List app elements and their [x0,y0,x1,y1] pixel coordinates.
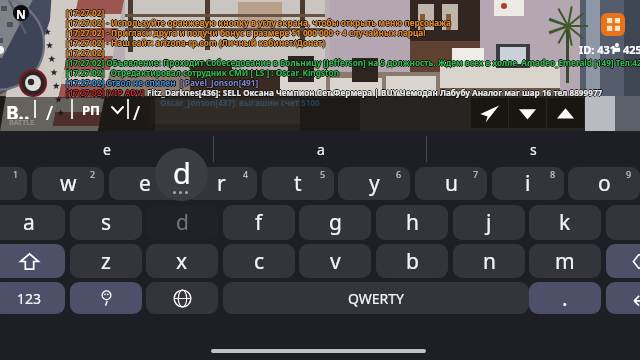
button[interactable]: u [415,167,487,200]
button[interactable]: s [70,205,142,240]
staticText: 6 [396,168,402,180]
button[interactable]: РП [82,100,101,120]
staticText: [17:27:02] Ствол не спилен [67,77,181,88]
button[interactable]: Enter [606,282,640,314]
staticText: [17:27:02] - Пригласи друга и получи бон… [66,26,426,37]
staticText: 1 [13,168,19,180]
staticText: [ Pavel_Jonson[491] [180,77,259,88]
staticText: Oscar_Jonson[437]: выгашин счет 5100 [160,97,320,108]
button[interactable]: x [146,244,218,278]
staticText: [17:27:02] [VIP ADV] [66,87,147,98]
button[interactable]: Scroll up [547,98,584,128]
staticText: [17:27:02] ОБъявление: Проходит Собеседо… [66,57,640,68]
button[interactable]: Scroll down [509,98,546,128]
button[interactable]: v [299,244,371,278]
button[interactable]: f [223,205,295,240]
staticText: [ Pavel_Jonson[491] [180,76,259,87]
button[interactable] [0,97,155,131]
staticText: [17:27:02] - Наш сайт: arizona-rp.com (Л… [67,37,326,48]
staticText: QWERTY [348,289,405,308]
button[interactable]: w [32,167,104,200]
button[interactable]: 123 [0,282,65,314]
staticText: [17:27:02] [VIP ADV] [66,86,147,97]
staticText: z [101,247,111,276]
staticText: [17:27:02] ОБъявление: Проходит Собеседо… [66,58,640,69]
button[interactable]: Character menu [601,13,625,36]
button[interactable]: a [0,205,65,240]
staticText: [17:27:02] Отредактировал сотрудник СМИ … [67,67,340,78]
staticText: [ Pavel_Jonson[491] [181,77,260,88]
button[interactable]: n [453,244,525,278]
staticText: [17:27:02] [VIP ADV] [65,87,146,98]
staticText: 123 [17,289,42,308]
staticText: i [525,169,531,198]
staticText: [17:27:02] [66,47,105,58]
staticText: 425 [623,42,640,57]
staticText: [17:27:02] [66,46,105,57]
staticText: [ Pavel_Jonson[491] [179,77,258,88]
staticText: [17:27:02] [65,7,104,18]
staticText: Fitz_Darknes[436]: SELL Оксана Чемпион С… [146,87,602,98]
button[interactable]: Language [146,282,218,314]
staticText: 8 [550,168,556,180]
button[interactable]: В.. [6,100,34,119]
button[interactable]: z [70,244,142,278]
staticText: [17:27:02] Ствол не спилен [66,76,180,87]
button[interactable]: b [376,244,448,278]
staticText: [17:27:02] - Пригласи друга и получи бон… [66,27,426,38]
button[interactable]: m [529,244,601,278]
staticText: [17:27:02] [66,8,105,19]
staticText: n [483,247,496,276]
staticText: [17:27:02] - Используйте оранжевую кнопк… [67,17,452,28]
button[interactable]: h [376,205,448,240]
button[interactable]: e [109,167,181,200]
button[interactable]: c [223,244,295,278]
button[interactable]: a [214,133,427,165]
staticText: m [555,247,575,276]
button[interactable]: j [453,205,525,240]
button[interactable]: d [146,205,218,240]
button[interactable]: Send [471,98,508,128]
button[interactable]: Emoji [70,282,142,314]
staticText: [17:27:02] - Пригласи друга и получи бон… [65,27,425,38]
staticText: o [598,169,611,198]
staticText: [17:27:02] Отредактировал сотрудник СМИ … [66,66,339,77]
button[interactable]: o [568,167,640,200]
button[interactable]: l [606,205,640,240]
staticText: y [369,169,380,198]
button[interactable]: QWERTY [223,282,529,314]
staticText: N [16,6,26,22]
staticText: РП [82,101,101,119]
staticText: v [330,247,341,276]
staticText: [17:27:02] Отредактировал сотрудник СМИ … [65,67,338,78]
button[interactable]: s [427,133,640,165]
staticText: [17:27:02] - Используйте оранжевую кнопк… [66,18,451,29]
button[interactable]: k [529,205,601,240]
staticText: h [406,208,419,237]
staticText: В.. [6,100,30,119]
staticText: Fitz_Darknes[436]: SELL Оксана Чемпион С… [147,87,603,98]
staticText: g [329,208,342,237]
staticText: s [530,140,537,159]
button[interactable]: q [0,167,27,200]
button[interactable]: Expand chat type [111,106,124,114]
staticText: 4 [243,168,249,180]
button[interactable]: r [185,167,257,200]
button[interactable]: Backspace [606,244,640,278]
button[interactable]: e [0,133,214,165]
staticText: [17:27:02] [67,7,106,18]
staticText: [17:27:02] - Пригласи друга и получи бон… [67,27,427,38]
staticText: j [486,208,492,237]
staticText: [17:27:02] Ствол не спилен [65,77,179,88]
staticText: e [103,140,111,159]
button[interactable]: . [529,282,601,314]
staticText: [17:27:02] - Наш сайт: arizona-rp.com (Л… [66,37,325,48]
button[interactable]: g [299,205,371,240]
button[interactable]: y [338,167,410,200]
button[interactable]: i [492,167,564,200]
button[interactable]: Shift [0,244,65,278]
staticText: [17:27:02] - Используйте оранжевую кнопк… [66,16,451,27]
staticText: Fitz_Darknes[436]: SELL Оксана Чемпион С… [147,86,603,97]
button[interactable]: t [262,167,334,200]
